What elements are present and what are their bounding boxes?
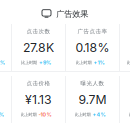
staticText: 广告效果 <box>56 9 88 19</box>
staticText: 曝光人数 <box>80 80 104 87</box>
staticText: 比上时期 <box>126 60 130 65</box>
button[interactable]: 广告点击率 <box>66 24 119 71</box>
staticText: 点击次数 <box>26 28 50 35</box>
staticText: 比上时期 <box>128 112 130 117</box>
staticText: 广告点击率 <box>77 28 107 35</box>
staticText: 9.7M <box>78 92 106 107</box>
staticText: 比上时期 <box>21 60 37 65</box>
staticText: -10% <box>38 111 51 118</box>
staticText: +3% <box>0 111 4 118</box>
button[interactable]: 点击价格 <box>12 76 65 123</box>
button[interactable]: 转化次数 <box>120 24 130 71</box>
staticText: 27.8K <box>23 40 54 55</box>
staticText: +12% <box>0 59 5 66</box>
button[interactable]: 转化成本 <box>120 76 130 123</box>
button[interactable]: 花费总额 <box>0 76 11 123</box>
staticText: +1% <box>93 59 104 66</box>
staticText: 比上时期 <box>75 60 91 65</box>
button[interactable]: 曝光人数 <box>66 76 119 123</box>
staticText: +4% <box>92 111 105 118</box>
staticText: 0.18% <box>75 40 109 55</box>
staticText: 比上时期 <box>20 112 36 117</box>
staticText: +9% <box>39 59 51 66</box>
button[interactable]: 点击次数 <box>12 24 65 71</box>
staticText: 比上时期 <box>74 112 90 117</box>
button[interactable]: 广告效果 <box>42 8 88 20</box>
button[interactable]: 展示次数 <box>0 24 11 71</box>
staticText: ¥1.13 <box>25 92 52 107</box>
staticText: 点击价格 <box>26 80 50 87</box>
